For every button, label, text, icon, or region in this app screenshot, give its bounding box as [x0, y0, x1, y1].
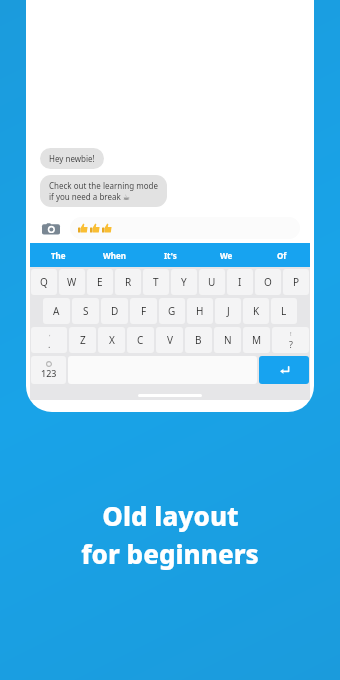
button[interactable]: Camera: [40, 217, 62, 239]
button[interactable]: !: [272, 327, 309, 353]
staticText: When: [103, 250, 126, 261]
button[interactable]: 123: [31, 356, 66, 384]
button[interactable]: U: [199, 269, 225, 295]
staticText: B: [195, 333, 202, 347]
button[interactable]: H: [187, 298, 213, 324]
button[interactable]: Enter: [259, 356, 309, 384]
staticText: V: [167, 333, 173, 347]
staticText: N: [224, 333, 232, 347]
staticText: D: [111, 304, 119, 318]
button[interactable]: ,: [31, 327, 67, 353]
button[interactable]: N: [214, 327, 241, 353]
button[interactable]: Z: [69, 327, 96, 353]
button[interactable]: T: [143, 269, 169, 295]
staticText: P: [293, 275, 300, 289]
staticText: ,: [49, 330, 51, 338]
staticText: K: [253, 304, 260, 318]
staticText: We: [220, 250, 233, 261]
button[interactable]: [70, 217, 300, 239]
staticText: A: [53, 304, 60, 318]
button[interactable]: I: [227, 269, 253, 295]
staticText: S: [83, 304, 89, 318]
staticText: Hey newbie!: [49, 153, 95, 164]
staticText: T: [153, 275, 159, 289]
staticText: It's: [164, 250, 177, 261]
button[interactable]: When: [86, 243, 142, 267]
staticText: Of: [277, 250, 287, 261]
button[interactable]: We: [198, 243, 254, 267]
staticText: G: [168, 304, 176, 318]
staticText: J: [227, 304, 230, 318]
staticText: Old layout: [102, 498, 239, 533]
staticText: L: [281, 304, 287, 318]
staticText: M: [252, 333, 262, 347]
staticText: U: [208, 275, 216, 289]
button[interactable]: A: [43, 298, 70, 324]
button[interactable]: C: [127, 327, 154, 353]
staticText: Y: [181, 275, 187, 289]
staticText: !: [290, 330, 292, 338]
staticText: Q: [40, 275, 48, 289]
staticText: ?: [289, 338, 293, 350]
button[interactable]: D: [101, 298, 128, 324]
button[interactable]: Check out the learning mode if you need …: [40, 175, 167, 207]
staticText: X: [109, 333, 115, 347]
staticText: O: [264, 275, 272, 289]
staticText: 123: [41, 367, 57, 379]
staticText: C: [137, 333, 144, 347]
button[interactable]: The: [30, 243, 86, 267]
button[interactable]: Y: [171, 269, 197, 295]
staticText: W: [67, 275, 77, 289]
button[interactable]: Of: [254, 243, 310, 267]
staticText: .: [48, 338, 51, 350]
staticText: F: [141, 304, 147, 318]
button[interactable]: It's: [142, 243, 198, 267]
staticText: E: [97, 275, 103, 289]
button[interactable]: S: [72, 298, 99, 324]
button[interactable]: Hey newbie!: [40, 148, 104, 169]
button[interactable]: G: [159, 298, 185, 324]
button[interactable]: V: [156, 327, 183, 353]
button[interactable]: O: [255, 269, 281, 295]
button[interactable]: K: [243, 298, 269, 324]
button[interactable]: X: [98, 327, 125, 353]
button[interactable]: L: [271, 298, 297, 324]
button[interactable]: B: [185, 327, 212, 353]
staticText: for beginners: [81, 536, 259, 571]
button[interactable]: W: [59, 269, 85, 295]
button[interactable]: Q: [31, 269, 57, 295]
staticText: R: [125, 275, 132, 289]
staticText: H: [196, 304, 204, 318]
button[interactable]: J: [215, 298, 241, 324]
button[interactable]: F: [130, 298, 157, 324]
button[interactable]: P: [283, 269, 309, 295]
staticText: I: [238, 275, 242, 289]
staticText: Z: [80, 333, 86, 347]
button[interactable]: E: [87, 269, 113, 295]
staticText: The: [51, 250, 66, 261]
button[interactable]: M: [243, 327, 270, 353]
button[interactable]: R: [115, 269, 141, 295]
staticText: Check out the learning mode if you need …: [49, 180, 158, 202]
